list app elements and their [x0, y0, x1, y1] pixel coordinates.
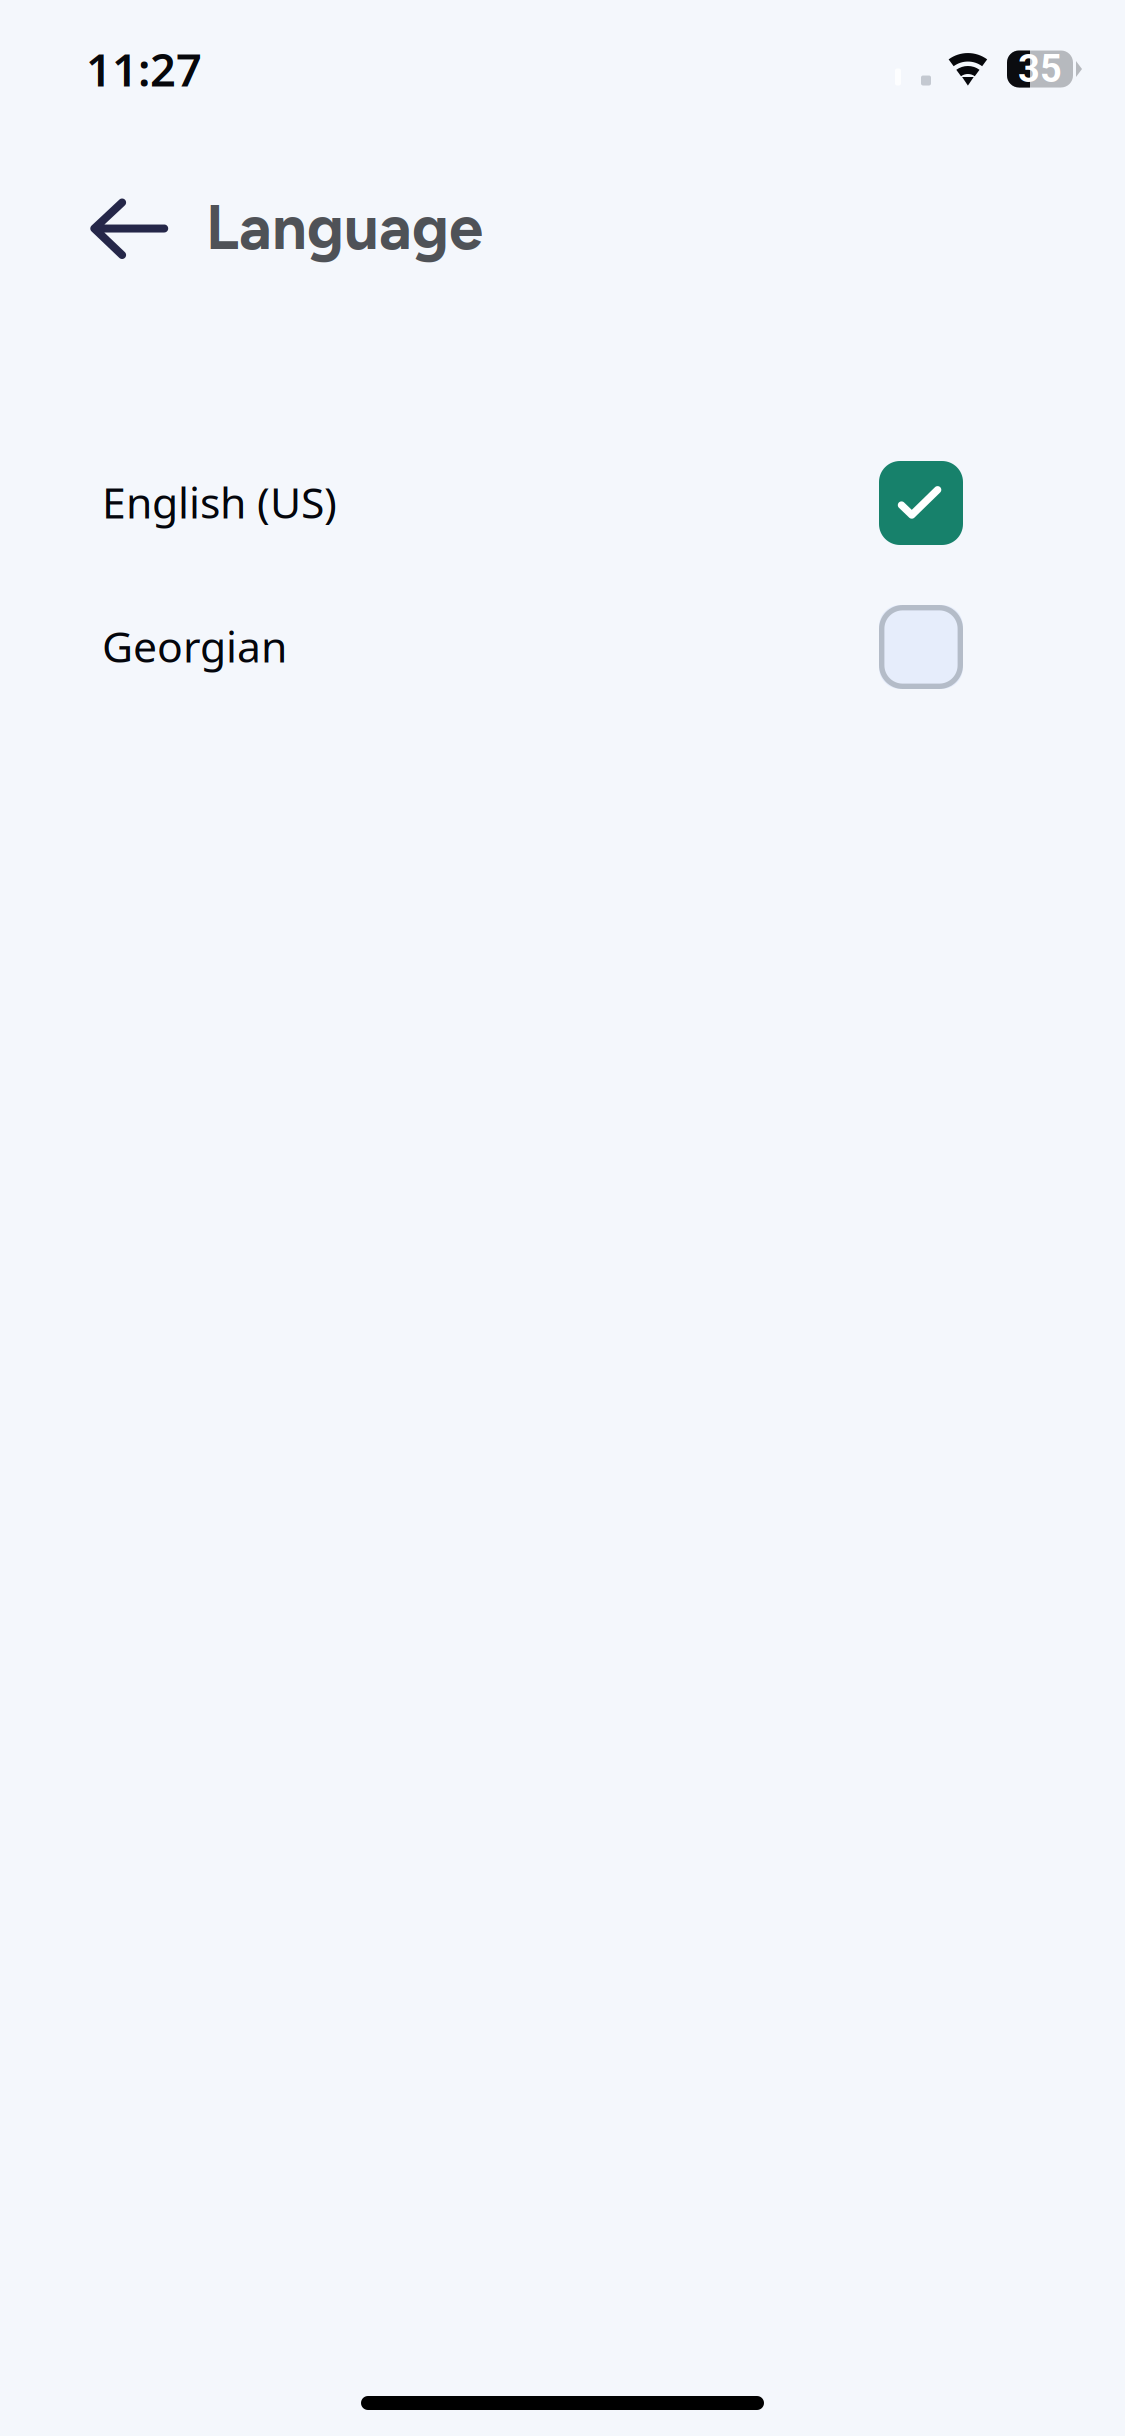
button[interactable]: Back [86, 199, 168, 260]
staticText: English (US) [102, 473, 337, 531]
staticText: 11:27 [86, 38, 202, 100]
staticText: 35 [1018, 47, 1062, 91]
staticText: Language [206, 191, 483, 264]
staticText: Georgian [102, 617, 287, 675]
button[interactable]: Georgian [0, 575, 1125, 719]
button[interactable]: English (US) [0, 431, 1125, 575]
